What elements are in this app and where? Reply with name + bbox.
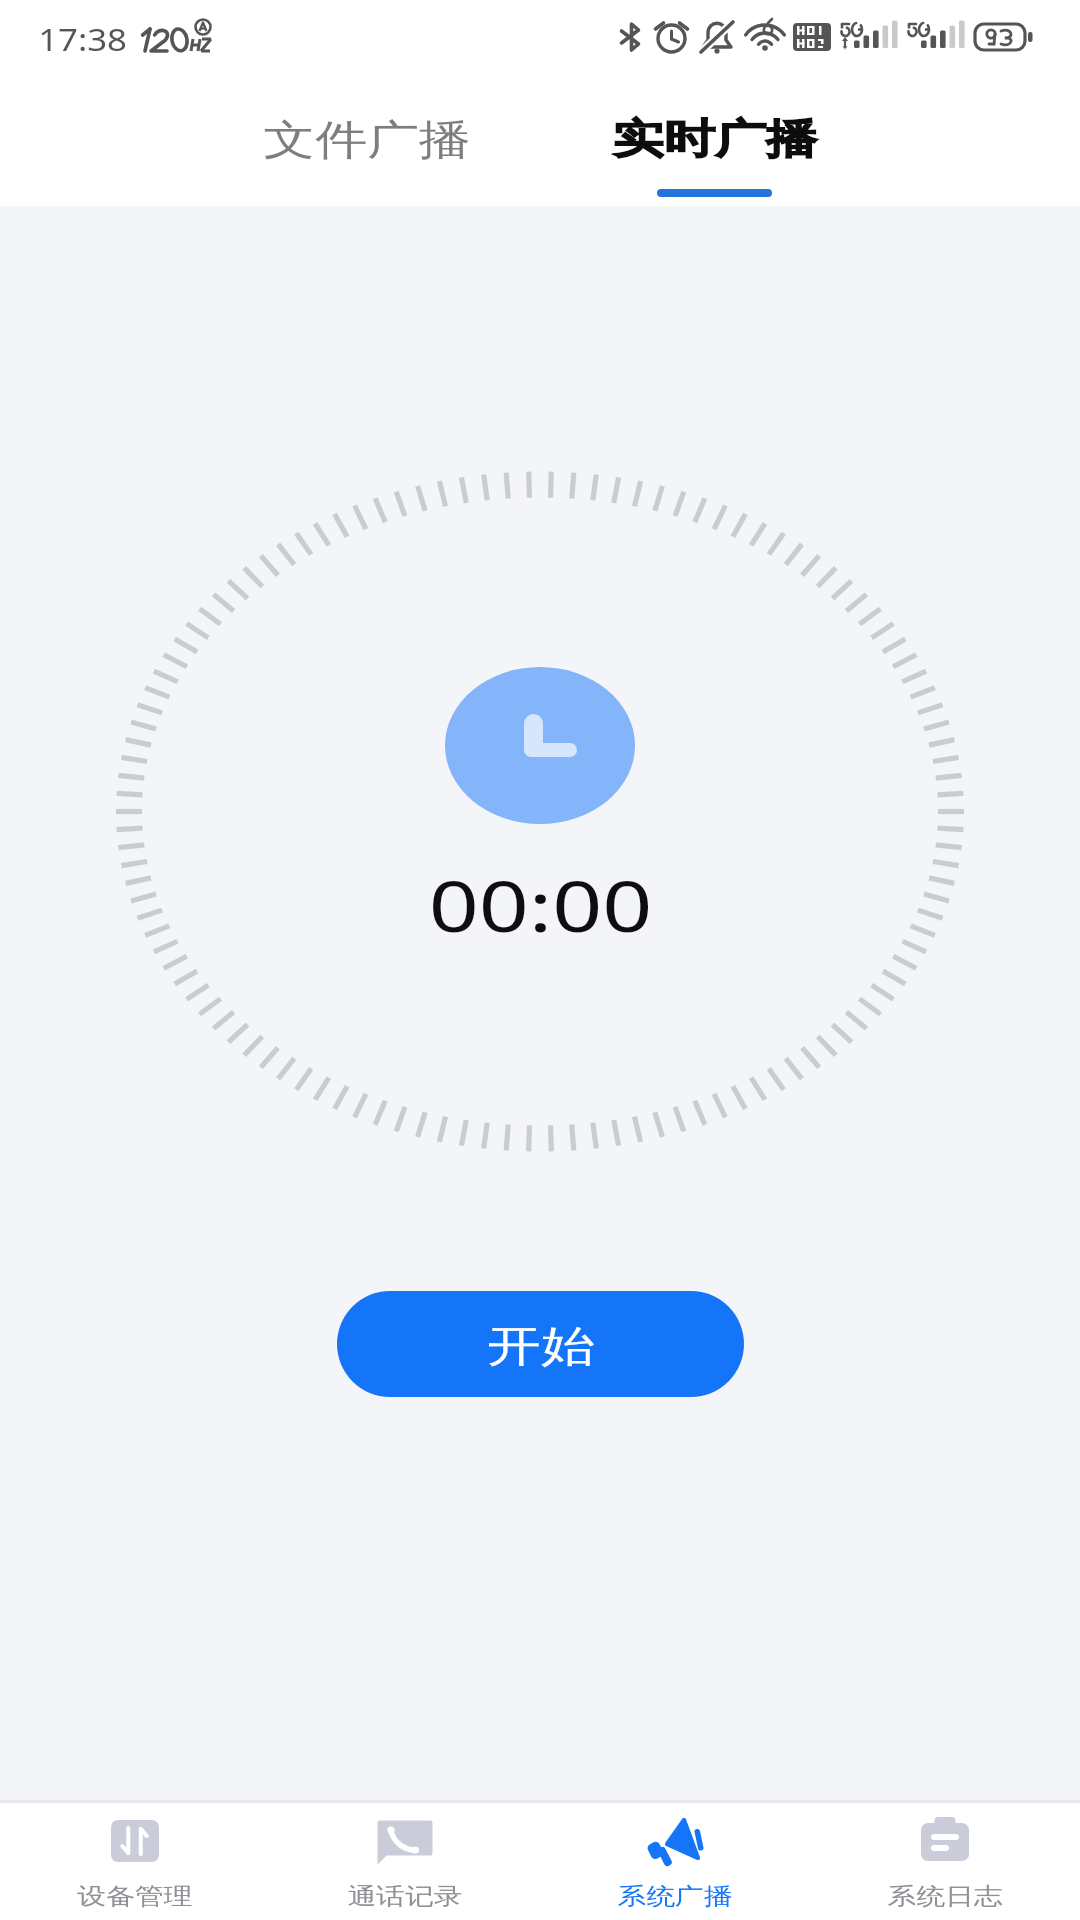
staticText: 00:00: [429, 857, 652, 937]
button[interactable]: 文件广播: [193, 78, 540, 206]
staticText: 文件广播: [263, 114, 471, 166]
staticText: 17:38: [38, 18, 128, 60]
button[interactable]: 系统日志: [810, 1803, 1080, 1920]
button[interactable]: 通话记录: [270, 1803, 540, 1920]
button[interactable]: 实时广播: [541, 78, 888, 206]
staticText: 系统日志: [887, 1882, 1002, 1911]
staticText: 实时广播: [612, 114, 817, 166]
staticText: 通话记录: [347, 1882, 462, 1911]
staticText: 设备管理: [77, 1882, 192, 1911]
staticText: 系统广播: [617, 1882, 732, 1911]
button[interactable]: 设备管理: [0, 1803, 270, 1920]
staticText: 开始: [487, 1320, 595, 1374]
button[interactable]: 系统广播: [540, 1803, 810, 1920]
button[interactable]: 开始: [337, 1291, 744, 1397]
